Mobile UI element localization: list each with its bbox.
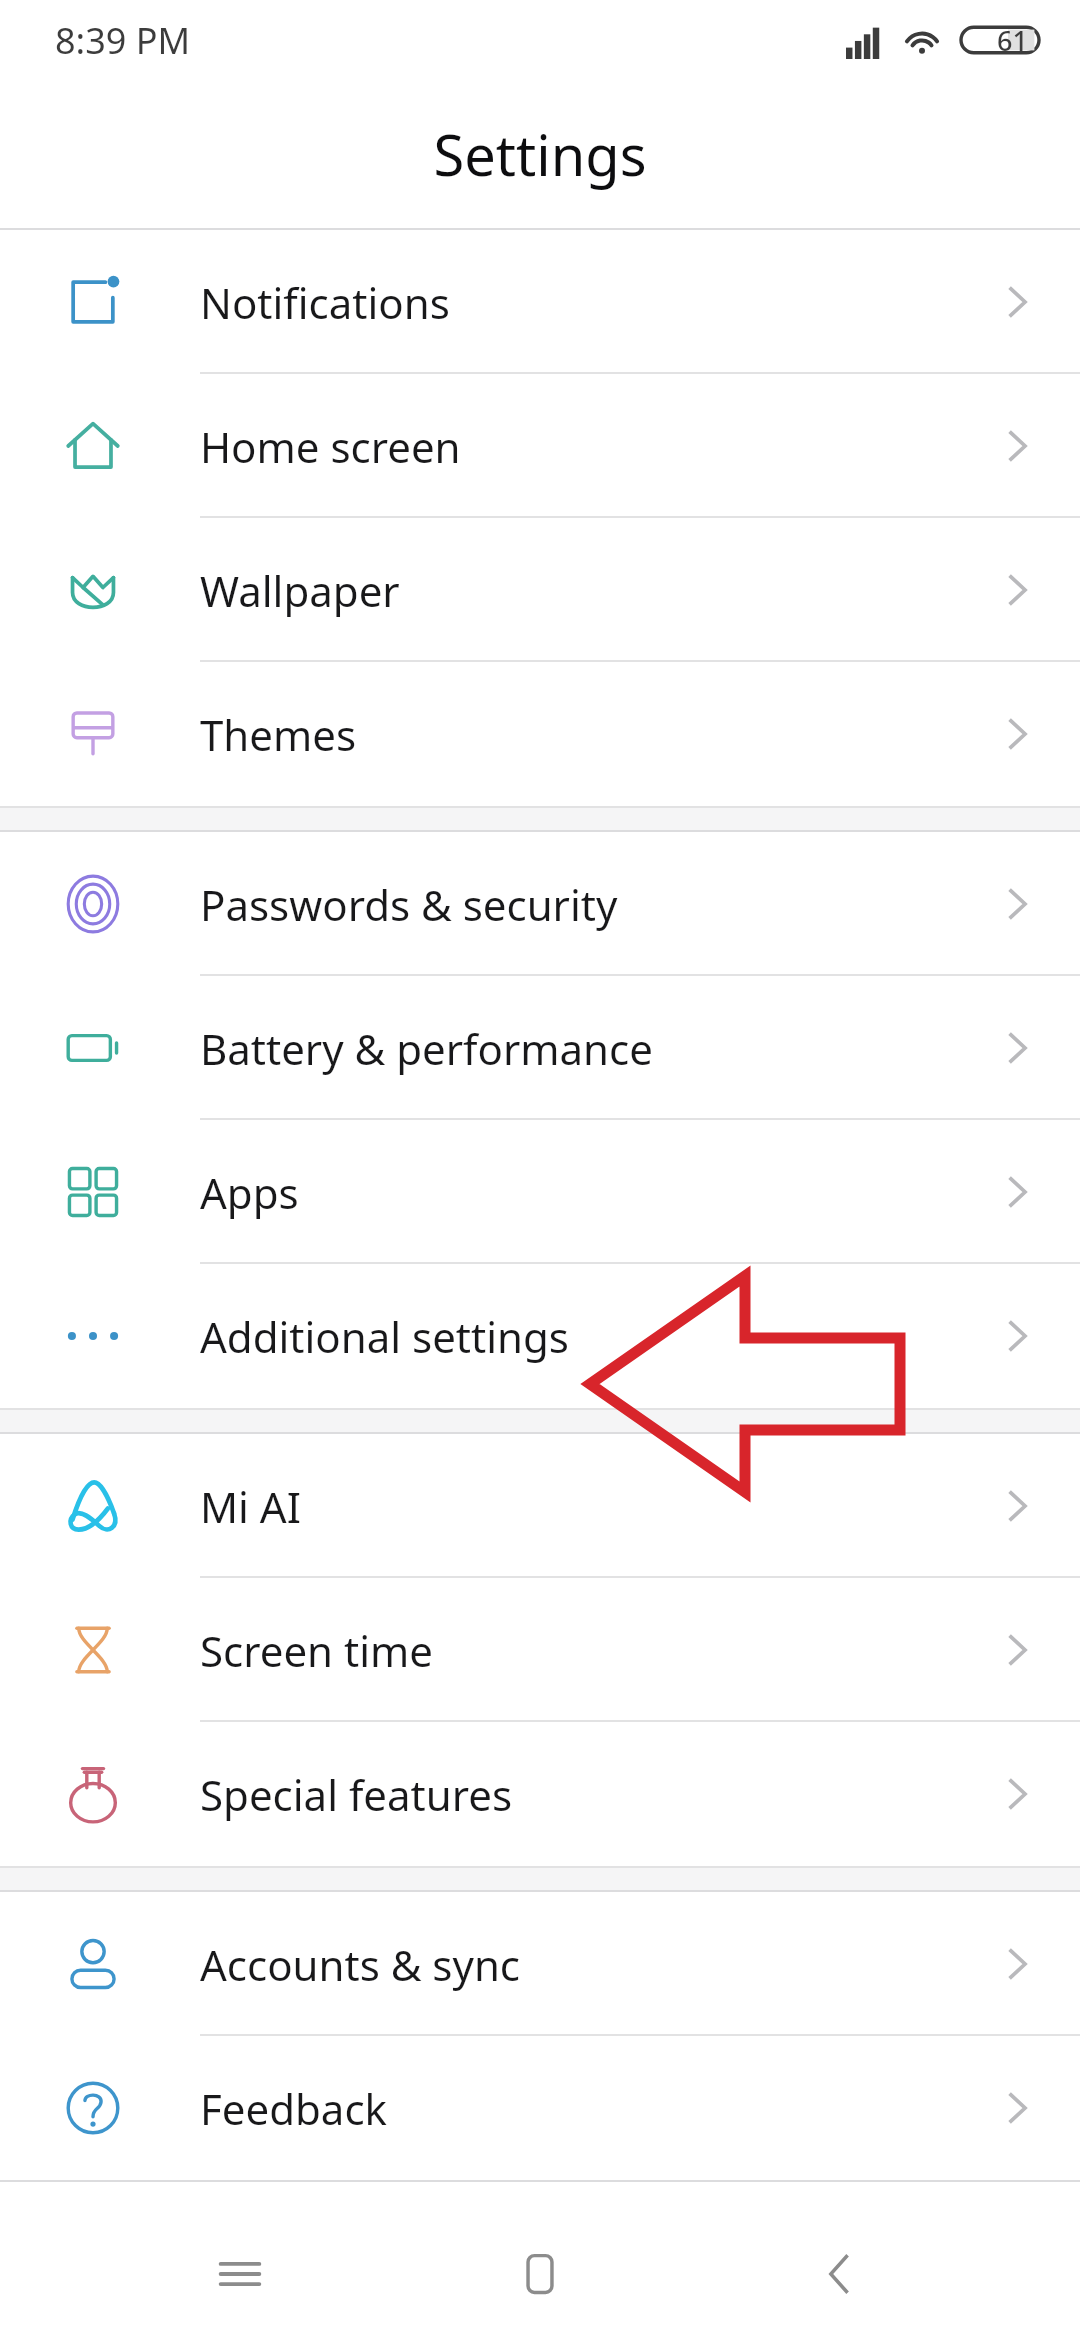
button[interactable]: Home [480, 2214, 600, 2334]
button[interactable]: Accounts & sync [0, 1892, 1080, 2036]
staticText: 61 [997, 22, 1028, 59]
button[interactable]: Mi AI [0, 1434, 1080, 1578]
staticText: Special features [200, 1766, 513, 1823]
button[interactable]: Feedback [0, 2036, 1080, 2180]
staticText: Feedback [200, 2080, 387, 2137]
staticText: Battery & performance [200, 1020, 653, 1077]
button[interactable]: Themes [0, 662, 1080, 806]
staticText: Accounts & sync [200, 1936, 520, 1993]
button[interactable]: Apps [0, 1120, 1080, 1264]
staticText: Wallpaper [200, 562, 400, 619]
staticText: Mi AI [200, 1478, 301, 1535]
staticText: Notifications [200, 274, 450, 331]
button[interactable]: Passwords & security [0, 832, 1080, 976]
staticText: Themes [200, 706, 357, 763]
button[interactable]: Back [780, 2214, 900, 2334]
staticText: Screen time [200, 1622, 433, 1679]
staticText: Home screen [200, 418, 461, 475]
button[interactable]: Battery & performance [0, 976, 1080, 1120]
button[interactable]: Wallpaper [0, 518, 1080, 662]
button[interactable]: Special features [0, 1722, 1080, 1866]
button[interactable]: Additional settings [0, 1264, 1080, 1408]
button[interactable]: Screen time [0, 1578, 1080, 1722]
button[interactable]: Home screen [0, 374, 1080, 518]
staticText: Passwords & security [200, 876, 618, 933]
staticText: Apps [200, 1164, 299, 1221]
button[interactable]: Notifications [0, 230, 1080, 374]
button[interactable]: Recents [180, 2214, 300, 2334]
staticText: Additional settings [200, 1308, 569, 1365]
staticText: 8:39 PM [55, 16, 191, 65]
staticText: Settings [433, 116, 647, 192]
